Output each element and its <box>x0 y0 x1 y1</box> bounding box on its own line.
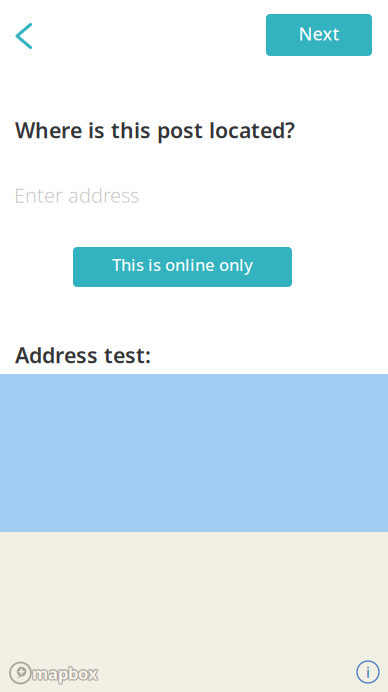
staticText: i <box>366 662 370 682</box>
staticText: mapbox <box>33 662 99 685</box>
staticText: This is online only <box>112 253 253 276</box>
staticText: mapbox <box>32 661 98 683</box>
button[interactable]: This is online only <box>73 247 292 287</box>
staticText: Next <box>298 21 339 46</box>
staticText: Address test: <box>15 341 151 369</box>
button[interactable]: Next <box>266 14 372 56</box>
button[interactable]: Map information <box>357 661 379 683</box>
staticText: Where is this post located? <box>15 116 295 144</box>
staticText: mapbox <box>33 661 99 683</box>
staticText: Enter address <box>14 182 139 208</box>
staticText: mapbox <box>33 662 99 684</box>
staticText: mapbox <box>31 662 97 684</box>
staticText: mapbox <box>32 663 98 685</box>
button[interactable]: Back <box>2 14 46 58</box>
staticText: mapbox <box>31 661 97 683</box>
staticText: mapbox <box>32 662 98 684</box>
staticText: mapbox <box>31 662 97 685</box>
